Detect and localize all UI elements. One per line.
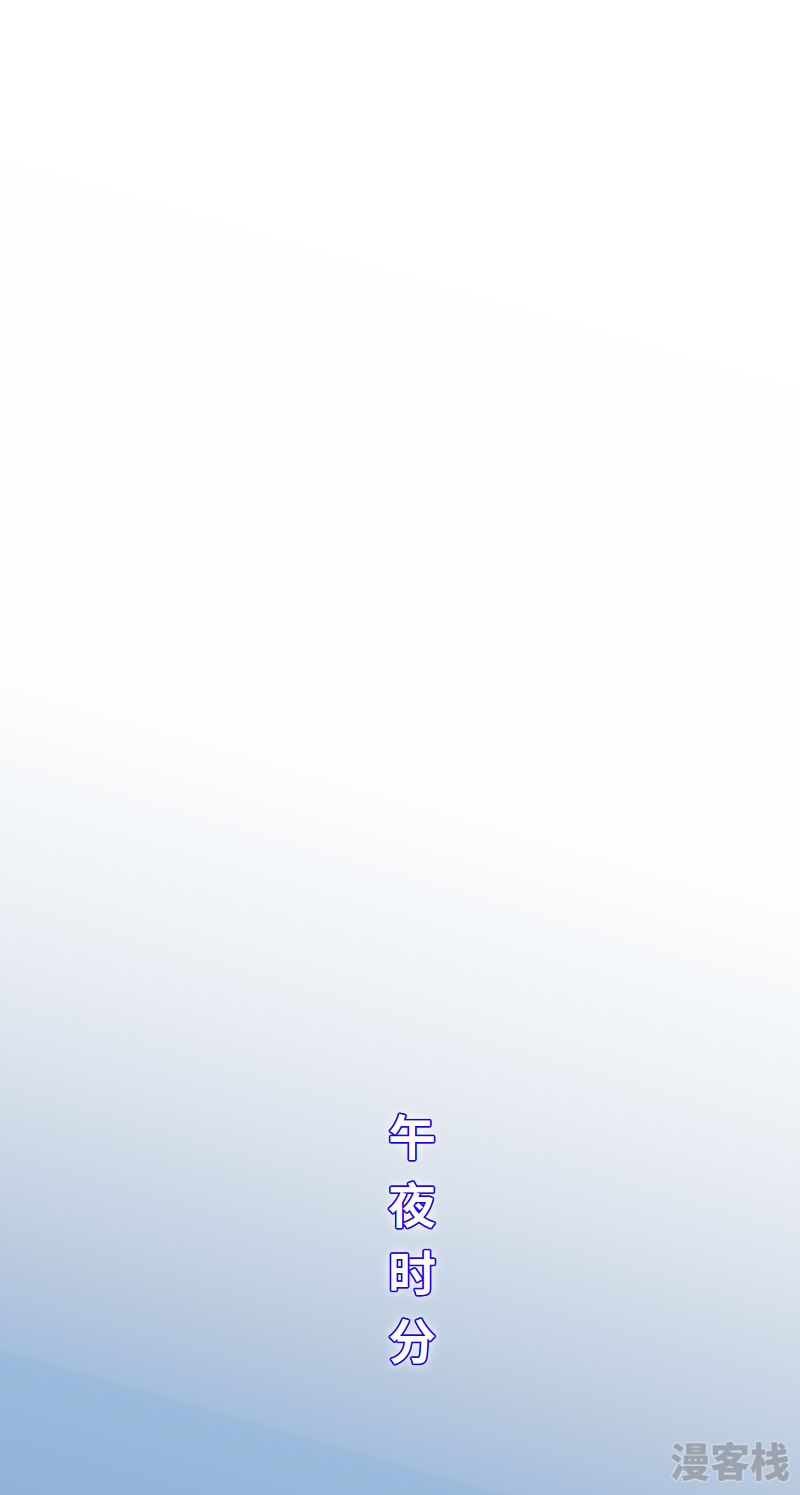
staticText: 漫客栈	[670, 1431, 790, 1489]
staticText: 时	[388, 1235, 436, 1305]
button[interactable]: 午夜时分 — comic page	[0, 0, 800, 1495]
staticText: 夜	[388, 1169, 436, 1238]
staticText: 分	[387, 1302, 435, 1372]
staticText: 时	[388, 1235, 436, 1305]
staticText: 午	[389, 1098, 437, 1168]
staticText: 分	[388, 1303, 436, 1373]
staticText: 时	[387, 1234, 435, 1303]
staticText: 漫客栈	[669, 1430, 789, 1488]
staticText: 时	[386, 1235, 434, 1305]
staticText: 午	[388, 1099, 436, 1169]
staticText: 时	[389, 1235, 437, 1305]
staticText: 时	[387, 1234, 435, 1304]
staticText: 时	[387, 1236, 435, 1305]
staticText: 时	[389, 1234, 437, 1304]
staticText: 午	[388, 1098, 436, 1167]
staticText: 夜	[389, 1168, 437, 1237]
staticText: 午	[387, 1098, 435, 1167]
staticText: 午	[386, 1099, 434, 1169]
staticText: 分	[389, 1303, 437, 1373]
staticText: 分	[389, 1304, 437, 1373]
staticText: 夜	[389, 1167, 437, 1237]
staticText: 分	[387, 1304, 435, 1374]
staticText: 漫客栈	[671, 1431, 791, 1489]
staticText: 午	[387, 1100, 435, 1169]
staticText: 时	[389, 1236, 437, 1306]
staticText: 分	[386, 1303, 434, 1373]
staticText: 夜	[388, 1167, 436, 1237]
staticText: 时	[388, 1235, 436, 1305]
staticText: 分	[389, 1302, 437, 1371]
staticText: 午	[387, 1098, 435, 1168]
staticText: 午	[389, 1100, 437, 1169]
staticText: 时	[389, 1234, 437, 1303]
staticText: 夜	[388, 1167, 436, 1237]
staticText: 夜	[386, 1167, 434, 1237]
staticText: 时	[388, 1234, 436, 1303]
staticText: 时	[388, 1237, 436, 1306]
staticText: 分	[388, 1303, 436, 1373]
staticText: 午	[387, 1100, 435, 1170]
staticText: 漫客栈	[669, 1429, 789, 1487]
staticText: 夜	[387, 1168, 435, 1237]
staticText: 时	[389, 1236, 437, 1305]
staticText: 夜	[387, 1166, 435, 1235]
staticText: 午	[389, 1098, 437, 1167]
staticText: 夜	[389, 1166, 437, 1235]
staticText: 漫客栈	[669, 1431, 789, 1489]
staticText: 分	[388, 1302, 436, 1371]
staticText: 时	[387, 1236, 435, 1306]
staticText: 夜	[387, 1166, 435, 1236]
staticText: 午	[388, 1099, 436, 1169]
staticText: 午	[389, 1099, 437, 1169]
staticText: 夜	[389, 1166, 437, 1236]
staticText: 漫客栈	[670, 1429, 790, 1486]
staticText: 午	[388, 1101, 436, 1170]
staticText: 分	[389, 1302, 437, 1372]
staticText: 午	[389, 1100, 437, 1170]
staticText: 夜	[387, 1168, 435, 1238]
staticText: 分	[388, 1303, 436, 1373]
staticText: 漫客栈	[670, 1430, 790, 1488]
staticText: 夜	[389, 1168, 437, 1238]
staticText: 分	[387, 1302, 435, 1371]
staticText: 漫客栈	[671, 1430, 791, 1488]
staticText: 午	[388, 1099, 436, 1169]
staticText: 漫客栈	[671, 1429, 791, 1487]
staticText: 夜	[388, 1166, 436, 1235]
staticText: 分	[389, 1304, 437, 1374]
staticText: 分	[387, 1304, 435, 1373]
staticText: 夜	[388, 1167, 436, 1237]
staticText: 分	[388, 1305, 436, 1374]
